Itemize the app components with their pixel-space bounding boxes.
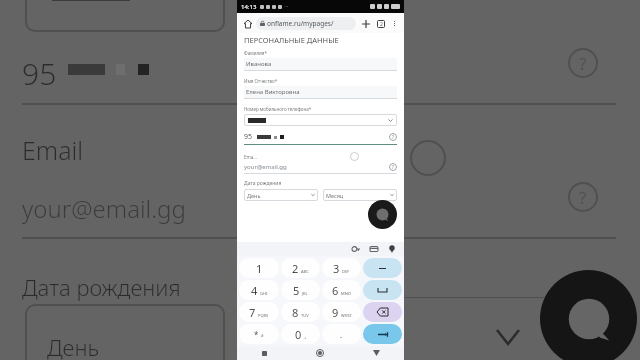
staticText: 14:13 bbox=[241, 3, 257, 11]
staticText: ··· bbox=[283, 3, 289, 10]
staticText: ? bbox=[579, 186, 587, 209]
staticText: 7 bbox=[249, 305, 256, 320]
staticText: . bbox=[340, 329, 343, 340]
staticText: 95 bbox=[22, 53, 57, 94]
staticText: День bbox=[47, 332, 100, 360]
button[interactable]: Tabs bbox=[374, 17, 387, 30]
staticText: ПЕРСОНАЛЬНЫЕ ДАННЫЕ bbox=[244, 35, 339, 45]
button[interactable]: Иванова bbox=[244, 58, 397, 70]
button[interactable]: Home bbox=[241, 17, 254, 30]
staticText: 4 bbox=[251, 283, 258, 298]
button[interactable]: 95 bbox=[244, 132, 397, 142]
button[interactable]: . bbox=[322, 324, 361, 344]
button[interactable]: Back bbox=[348, 346, 404, 360]
staticText: ? bbox=[392, 164, 394, 170]
staticText: 8 bbox=[292, 305, 299, 320]
button[interactable]: 8 bbox=[281, 302, 320, 322]
staticText: # bbox=[261, 333, 264, 338]
staticText: JKL bbox=[302, 291, 308, 296]
staticText: 1 bbox=[256, 261, 263, 276]
staticText: Дата рождения bbox=[244, 180, 282, 187]
button[interactable]: Addresses bbox=[386, 243, 398, 255]
button[interactable]: Open chat bbox=[540, 270, 637, 360]
button[interactable]: 6 bbox=[322, 280, 361, 300]
button[interactable]: * bbox=[239, 324, 279, 344]
button[interactable]: onflame.ru/mypages/ bbox=[256, 17, 356, 30]
staticText: 9 bbox=[332, 305, 339, 320]
staticText: onflame.ru/mypages/ bbox=[267, 19, 334, 28]
staticText: Фамилия* bbox=[244, 50, 267, 56]
button[interactable]: 4 bbox=[239, 280, 279, 300]
button[interactable]: Help email bbox=[389, 163, 397, 171]
staticText: 2 bbox=[380, 21, 383, 28]
staticText: your@email.gg bbox=[244, 163, 287, 171]
staticText: Дата рождения bbox=[22, 272, 181, 302]
button[interactable]: Backspace bbox=[363, 302, 402, 322]
button[interactable]: 0 bbox=[281, 324, 320, 344]
button[interactable]: 5 bbox=[281, 280, 320, 300]
button[interactable]: 1 bbox=[239, 258, 279, 278]
staticText: Ema… bbox=[244, 154, 257, 160]
button[interactable]: Help phone bbox=[389, 133, 397, 141]
button[interactable]: Space bbox=[363, 280, 402, 300]
button[interactable]: 2 bbox=[281, 258, 320, 278]
staticText: 2 bbox=[292, 261, 299, 276]
staticText: ? bbox=[579, 52, 587, 75]
staticText: 5 bbox=[293, 283, 300, 298]
staticText: DEF bbox=[342, 269, 350, 274]
button[interactable]: Chat bbox=[368, 200, 397, 229]
staticText: 3 bbox=[333, 261, 340, 276]
staticText: PQRS bbox=[258, 313, 269, 318]
staticText: + bbox=[304, 335, 307, 340]
button[interactable]: Месяц bbox=[323, 189, 397, 201]
staticText: День bbox=[247, 192, 261, 199]
button[interactable]: Recents bbox=[237, 346, 292, 360]
staticText: Иванова bbox=[246, 60, 272, 68]
staticText: MNO bbox=[341, 291, 351, 296]
button[interactable]: 7 bbox=[239, 302, 279, 322]
button[interactable]: Payment methods bbox=[368, 243, 380, 255]
staticText: GHI bbox=[260, 291, 268, 296]
staticText: Елена Викторовна bbox=[246, 88, 300, 96]
staticText: 95 bbox=[244, 132, 253, 142]
staticText: 0 bbox=[295, 327, 302, 342]
staticText: * bbox=[254, 329, 259, 340]
button[interactable]: Next bbox=[363, 324, 402, 344]
staticText: TUV bbox=[301, 313, 309, 318]
button[interactable]: Passwords bbox=[350, 243, 362, 255]
button[interactable]: Home bbox=[292, 346, 348, 360]
staticText: Месяц bbox=[326, 192, 344, 199]
button[interactable]: New tab bbox=[359, 17, 372, 30]
button[interactable]: More options bbox=[388, 17, 400, 29]
staticText: ? bbox=[392, 134, 394, 140]
staticText: WXYZ bbox=[341, 313, 352, 318]
button[interactable] bbox=[244, 114, 397, 126]
button[interactable]: Dash bbox=[363, 258, 402, 278]
button[interactable]: Елена Викторовна bbox=[244, 86, 397, 98]
staticText: Email bbox=[22, 133, 84, 167]
staticText: Номер мобильного телефона* bbox=[244, 106, 312, 112]
staticText: ABC bbox=[301, 269, 309, 274]
button[interactable]: 9 bbox=[322, 302, 361, 322]
button[interactable]: 3 bbox=[322, 258, 361, 278]
staticText: your@email.gg bbox=[22, 192, 186, 225]
staticText: 6 bbox=[332, 283, 339, 298]
button[interactable]: День bbox=[244, 189, 318, 201]
staticText: Имя Отчество* bbox=[244, 78, 278, 84]
